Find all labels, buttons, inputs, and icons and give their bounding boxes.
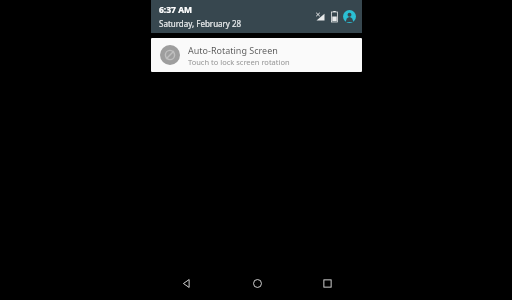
button[interactable]: Recent apps	[292, 266, 362, 300]
button[interactable]: Back	[151, 266, 222, 300]
button[interactable]: Auto-rotate	[151, 38, 362, 72]
staticText: 6:37 AM	[159, 4, 193, 16]
button[interactable]: Home	[222, 266, 292, 300]
staticText: Saturday, February 28	[159, 18, 242, 29]
other: Auto-rotate	[160, 45, 180, 65]
staticText: Touch to lock screen rotation	[188, 57, 290, 67]
staticText: Auto-Rotating Screen	[188, 44, 278, 56]
